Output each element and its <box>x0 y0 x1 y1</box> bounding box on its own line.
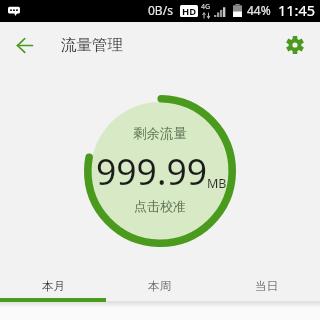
staticText: 流量管理 <box>61 35 123 55</box>
button[interactable]: 剩余流量 <box>84 95 236 247</box>
button[interactable]: Back <box>5 25 45 65</box>
staticText: MB <box>207 175 227 192</box>
staticText: 999.99 <box>96 147 208 195</box>
staticText: 当日 <box>255 279 278 293</box>
staticText: 0B/s <box>148 2 173 18</box>
staticText: 本月 <box>42 279 65 293</box>
button[interactable]: 本周 <box>106 272 213 302</box>
button[interactable]: Settings <box>275 25 315 65</box>
staticText: 本周 <box>148 279 171 293</box>
staticText: 11:45 <box>278 0 316 20</box>
staticText: 4G <box>201 2 211 12</box>
staticText: 点击校准 <box>134 198 186 214</box>
button[interactable]: 本月 <box>0 272 106 302</box>
staticText: HD <box>182 5 197 17</box>
button[interactable]: 当日 <box>213 272 320 302</box>
staticText: 44% <box>247 2 271 18</box>
staticText: 剩余流量 <box>133 125 187 142</box>
